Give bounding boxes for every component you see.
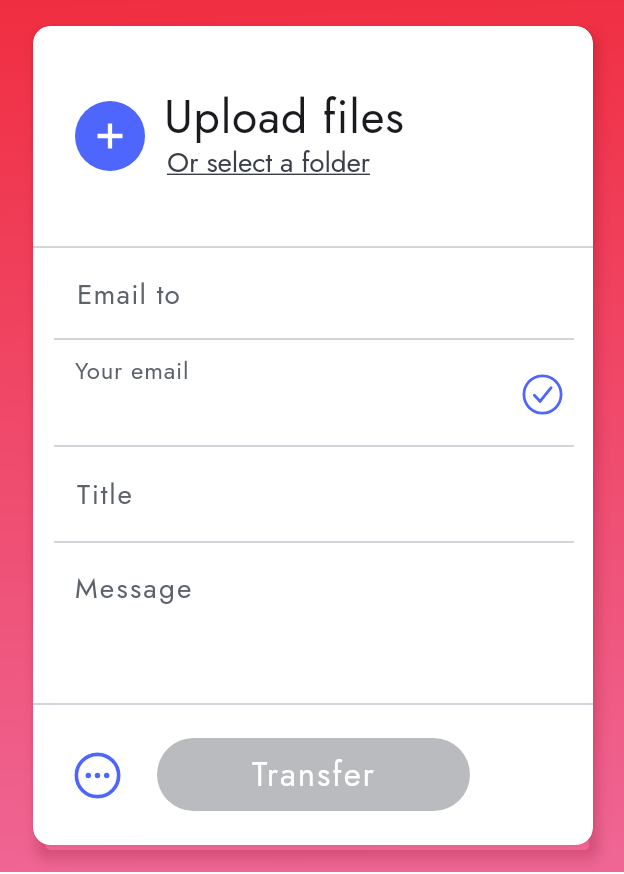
- staticText: Message: [75, 568, 194, 608]
- button[interactable]: Upload files: [33, 26, 593, 246]
- staticText: Transfer: [252, 751, 376, 799]
- staticText: Title: [77, 474, 134, 514]
- button[interactable]: More options: [74, 752, 121, 799]
- staticText: Your email: [75, 353, 190, 388]
- staticText: Upload files: [164, 84, 405, 150]
- button[interactable]: Your email: [33, 339, 593, 445]
- staticText: Email to: [77, 274, 181, 314]
- button[interactable]: Email confirmed: [522, 374, 563, 415]
- button[interactable]: Message: [33, 542, 593, 703]
- button[interactable]: Transfer: [157, 738, 470, 811]
- staticText: Or select a folder: [167, 142, 371, 182]
- button[interactable]: Title: [33, 446, 593, 541]
- button[interactable]: Email to: [33, 247, 593, 338]
